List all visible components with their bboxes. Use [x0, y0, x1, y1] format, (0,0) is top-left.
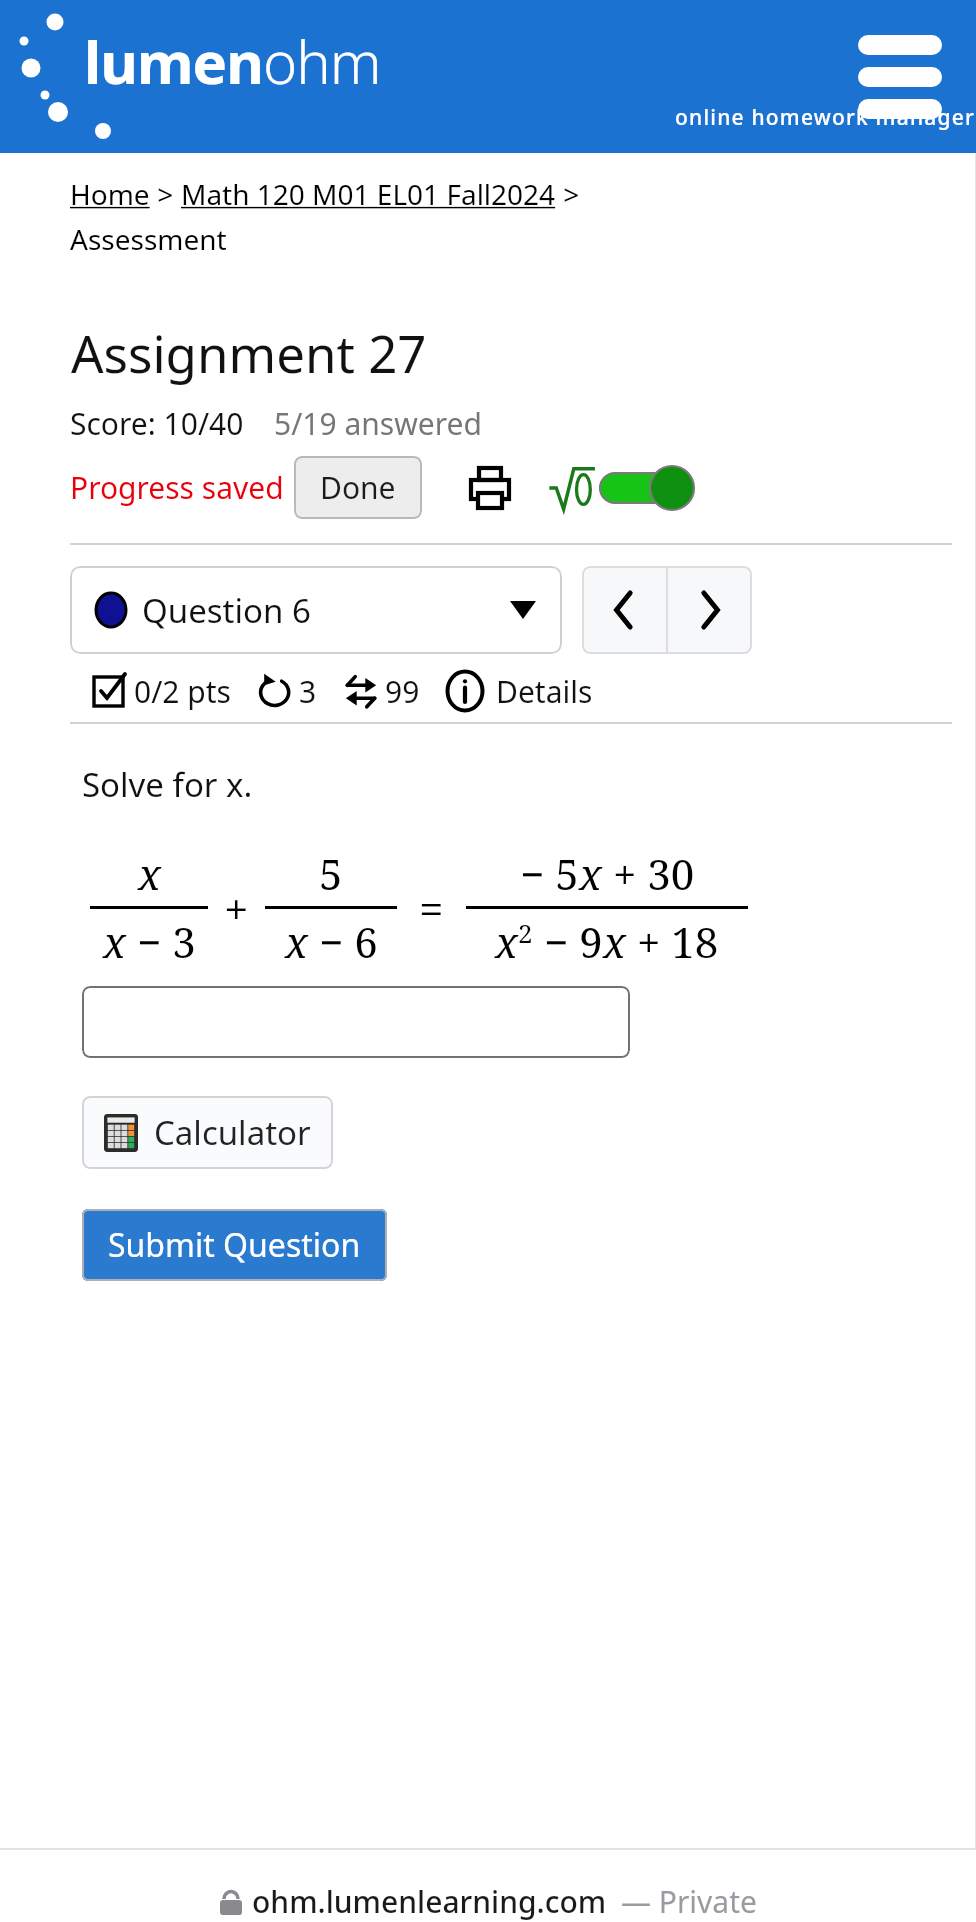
staticText: + 30 — [602, 845, 695, 902]
staticText: Home — [70, 175, 150, 213]
button[interactable]: Print — [464, 462, 516, 514]
staticText: ohm.lumenlearning.com — [252, 1881, 607, 1922]
staticText: ohm — [263, 22, 381, 101]
staticText: x — [103, 913, 126, 970]
button[interactable]: Question 6 — [70, 566, 562, 654]
button[interactable]: Math 120 M01 EL01 Fall2024 — [181, 175, 556, 213]
staticText: 0/2 pts — [134, 671, 231, 712]
staticText: − 9 — [533, 913, 603, 970]
staticText: — Private — [621, 1881, 757, 1922]
button[interactable]: Previous question — [582, 566, 666, 654]
staticText: − 3 — [126, 913, 196, 970]
button[interactable] — [82, 986, 630, 1058]
staticText: − 6 — [308, 913, 378, 970]
staticText: Solve for x. — [82, 762, 253, 807]
staticText: Assessment — [70, 220, 227, 258]
staticText: Question 6 — [142, 588, 311, 633]
staticText: lumen — [84, 22, 263, 101]
button[interactable]: Home — [70, 175, 150, 213]
staticText: x — [495, 913, 518, 970]
staticText: 5 — [319, 845, 343, 902]
staticText: x — [285, 913, 308, 970]
staticText: Details — [496, 671, 593, 712]
button[interactable]: Submit Question — [82, 1209, 387, 1281]
staticText: Score: 10/40 — [70, 403, 244, 444]
staticText: x — [138, 845, 161, 902]
button[interactable]: Details — [446, 670, 593, 712]
staticText: x — [603, 913, 626, 970]
button[interactable]: Calculator — [82, 1096, 333, 1169]
staticText: + 18 — [626, 913, 719, 970]
staticText: 3 — [299, 671, 317, 712]
button[interactable]: Toggle math view — [548, 464, 696, 512]
button[interactable]: Next question — [668, 566, 752, 654]
staticText: = — [419, 878, 444, 938]
staticText: online homework manager — [675, 103, 976, 132]
staticText: 2 — [518, 915, 533, 950]
staticText: > — [150, 175, 181, 213]
staticText: − 5 — [520, 845, 579, 902]
staticText: 99 — [385, 671, 420, 712]
staticText: 5/19 answered — [274, 403, 482, 444]
staticText: Math 120 M01 EL01 Fall2024 — [181, 175, 556, 213]
button[interactable]: Done — [294, 456, 422, 519]
staticText: Done — [320, 467, 396, 508]
staticText: > — [556, 175, 580, 213]
staticText: Progress saved — [70, 467, 284, 508]
staticText: Submit Question — [108, 1223, 361, 1267]
staticText: Assignment 27 — [71, 318, 427, 387]
staticText: Calculator — [154, 1110, 311, 1155]
staticText: + — [224, 878, 249, 938]
button[interactable]: Menu — [850, 27, 950, 127]
staticText: x — [579, 845, 602, 902]
